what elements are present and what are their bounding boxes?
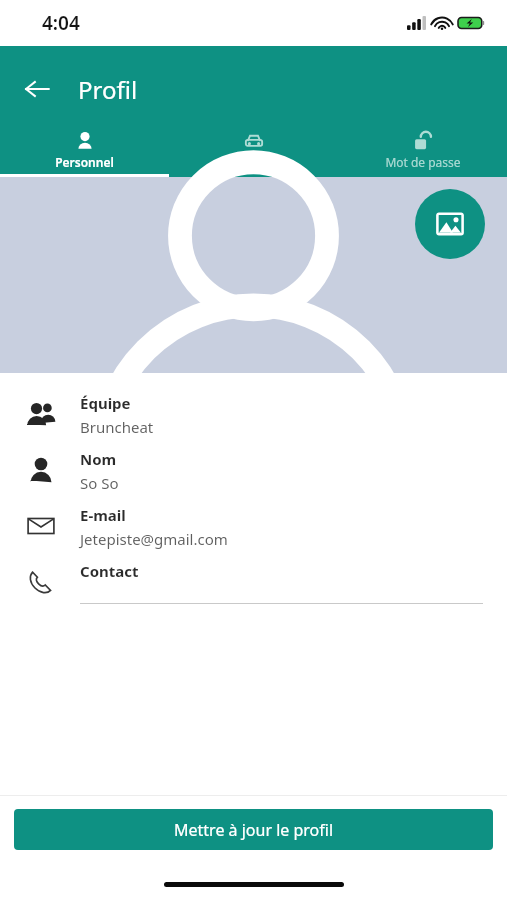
staticText: Bruncheat xyxy=(80,417,154,437)
staticText: Jetepiste@gmail.com xyxy=(80,529,228,549)
button[interactable]: Équipe xyxy=(0,387,507,443)
staticText: Mot de passe xyxy=(385,154,461,170)
staticText: Profil xyxy=(78,73,138,106)
button[interactable]: Véhicule xyxy=(169,124,338,177)
staticText: Équipe xyxy=(80,393,131,413)
staticText: E-mail xyxy=(80,505,126,525)
staticText: Contact xyxy=(80,561,139,581)
button[interactable]: Back xyxy=(14,66,60,112)
button[interactable]: Personnel xyxy=(0,124,169,177)
button[interactable]: Contact xyxy=(0,555,507,610)
staticText: Personnel xyxy=(55,154,114,170)
button[interactable]: Change photo xyxy=(415,189,485,259)
staticText: So So xyxy=(80,473,119,493)
button[interactable]: E-mail xyxy=(0,499,507,555)
button[interactable]: Mettre à jour le profil xyxy=(14,809,493,850)
button[interactable]: Mot de passe xyxy=(338,124,507,177)
staticText: Nom xyxy=(80,449,117,469)
staticText: 4:04 xyxy=(42,10,80,36)
staticText: Mettre à jour le profil xyxy=(174,819,334,841)
button[interactable]: Nom xyxy=(0,443,507,499)
